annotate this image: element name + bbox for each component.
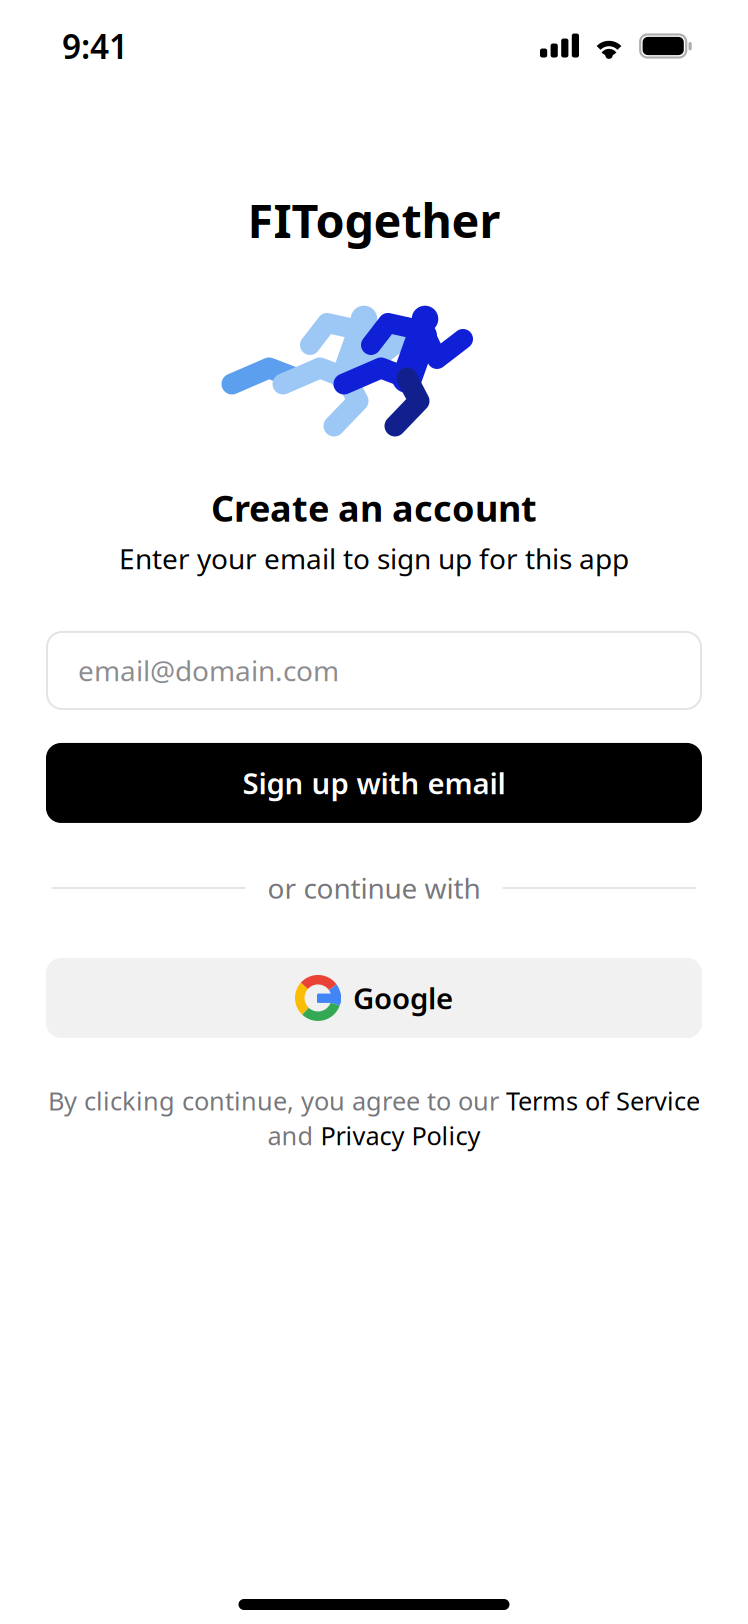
button[interactable]: Terms of Service — [506, 1084, 700, 1118]
button[interactable]: Privacy Policy — [320, 1119, 480, 1152]
staticText: Google — [353, 978, 453, 1017]
button[interactable]: Sign up with email — [46, 743, 702, 823]
button[interactable]: Google — [46, 958, 702, 1038]
staticText: email@domain.com — [78, 652, 339, 689]
staticText: Sign up with email — [242, 763, 505, 802]
staticText: 9:41 — [62, 24, 128, 68]
staticText: Create an account — [211, 484, 537, 532]
staticText: Terms of Service — [506, 1084, 700, 1118]
staticText: Enter your email to sign up for this app — [119, 540, 629, 577]
staticText: or continue with — [267, 869, 480, 907]
staticText: and — [267, 1119, 320, 1152]
staticText: FITogether — [247, 189, 500, 251]
staticText: Privacy Policy — [320, 1119, 480, 1152]
staticText: By clicking continue, you agree to our — [48, 1084, 506, 1118]
